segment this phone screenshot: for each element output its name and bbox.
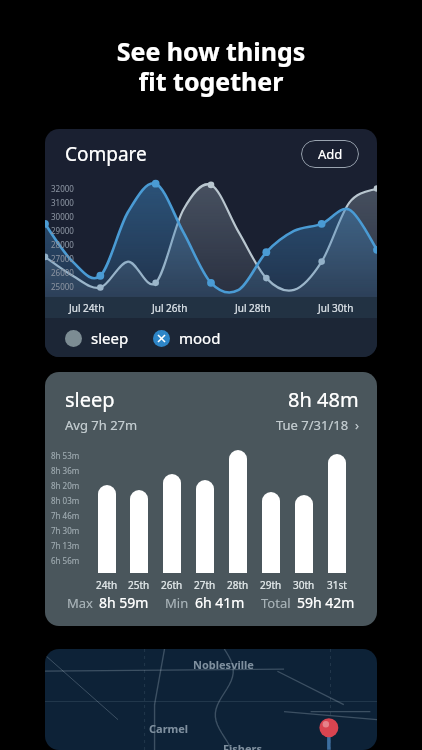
staticText: mood [179,328,221,348]
staticText: 29000 [51,225,74,236]
staticText: Compare [65,141,147,167]
staticText: 8h 20m [51,480,80,491]
staticText: Add [318,145,343,163]
staticText: Min [165,594,189,612]
staticText: 6h 56m [51,555,80,566]
staticText: 28000 [51,239,74,250]
staticText: 7h 46m [51,510,80,521]
staticText: Noblesville [193,657,254,672]
staticText: 32000 [51,183,74,194]
button[interactable]: sleep [65,328,129,348]
staticText: 26th [161,578,183,592]
staticText: 24th [96,578,118,592]
staticText: 31st [327,578,347,592]
staticText: 27th [194,578,216,592]
staticText: 28th [227,578,249,592]
button[interactable]: Add [301,140,359,168]
staticText: 25000 [51,281,74,292]
staticText: 29th [260,578,282,592]
staticText: 8h 59m [99,593,149,612]
staticText: 26000 [51,267,74,278]
staticText: 30000 [51,211,74,222]
staticText: 7h 13m [51,540,80,551]
staticText: Total [261,594,291,612]
staticText: Fishers [223,741,263,750]
staticText: Jul 28th [235,301,271,315]
staticText: sleep [65,386,115,413]
staticText: sleep [91,328,129,348]
staticText: See how things fit together [0,34,422,99]
button[interactable]: Map [45,649,377,750]
button[interactable]: sleep [45,372,377,626]
staticText: 30th [293,578,315,592]
staticText: 8h 48m [288,386,359,413]
staticText: 8h 36m [51,465,80,476]
staticText: Jul 26th [152,301,188,315]
staticText: 59h 42m [297,593,355,612]
staticText: 8h 03m [51,495,80,506]
staticText: 25th [128,578,150,592]
staticText: Max [67,594,93,612]
button[interactable]: mood [153,328,221,348]
staticText: 6h 41m [195,593,245,612]
staticText: Tue 7/31/18 › [276,416,359,434]
staticText: Jul 30th [318,301,354,315]
staticText: 27000 [51,253,74,264]
staticText: 7h 30m [51,525,80,536]
staticText: Jul 24th [69,301,105,315]
staticText: Avg 7h 27m [65,416,138,434]
staticText: 31000 [51,197,74,208]
staticText: 8h 53m [51,450,80,461]
staticText: Carmel [149,721,189,736]
